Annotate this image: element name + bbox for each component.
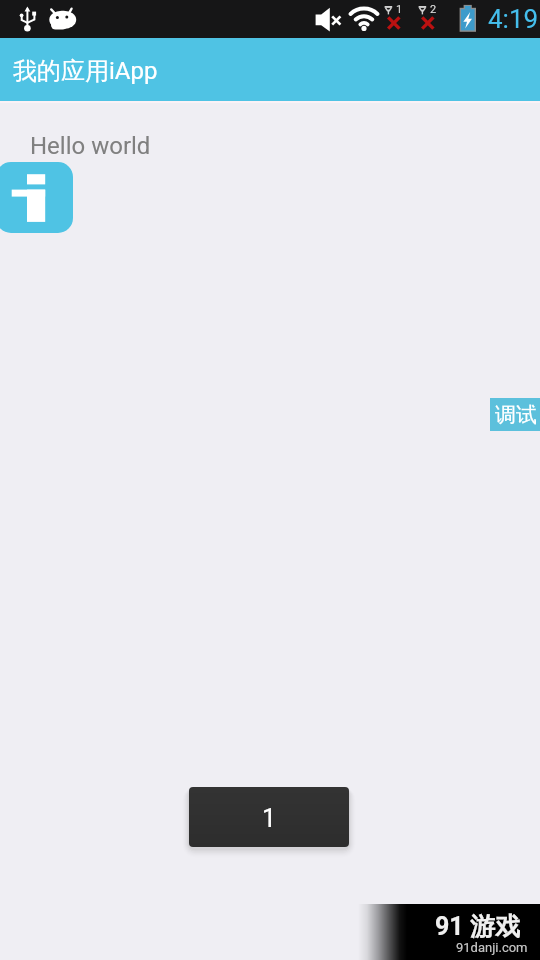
staticText: 1	[396, 3, 403, 16]
button[interactable]: 1	[189, 787, 349, 847]
staticText: 91danji.com	[456, 940, 528, 955]
button[interactable]: iApp	[0, 162, 73, 233]
staticText: 我的应用iApp	[13, 56, 158, 86]
staticText: Hello world	[30, 132, 151, 160]
staticText: 调试	[495, 402, 537, 428]
staticText: 91 游戏	[435, 911, 520, 942]
staticText: 4:19	[488, 4, 539, 34]
button[interactable]: 调试	[490, 398, 540, 431]
staticText: 2	[430, 3, 437, 16]
staticText: 1	[262, 804, 277, 833]
